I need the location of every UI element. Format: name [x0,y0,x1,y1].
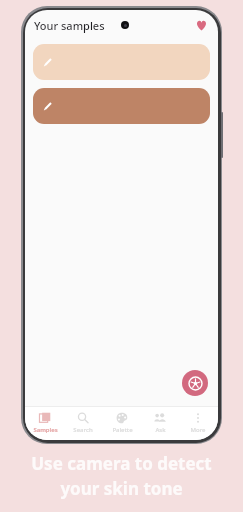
staticText: Samples [33,426,58,434]
button[interactable]: Open camera [182,370,208,396]
staticText: Palette [112,426,133,434]
button[interactable]: More [180,406,216,440]
button[interactable]: Ask [142,406,178,440]
other: Edit sample [41,55,55,69]
staticText: More [190,426,206,434]
button[interactable]: Search [65,406,101,440]
button[interactable]: Palette [104,406,140,440]
staticText: Use camera to detect [31,452,212,475]
other: Edit sample [41,99,55,113]
staticText: Your samples [34,18,105,33]
staticText: your skin tone [60,477,183,500]
staticText: Search [73,426,93,434]
button[interactable]: Favourites [192,16,210,34]
staticText: Ask [155,426,166,434]
button[interactable]: Edit sample [33,88,210,124]
button[interactable]: Samples [27,406,63,440]
button[interactable]: Edit sample [33,44,210,80]
